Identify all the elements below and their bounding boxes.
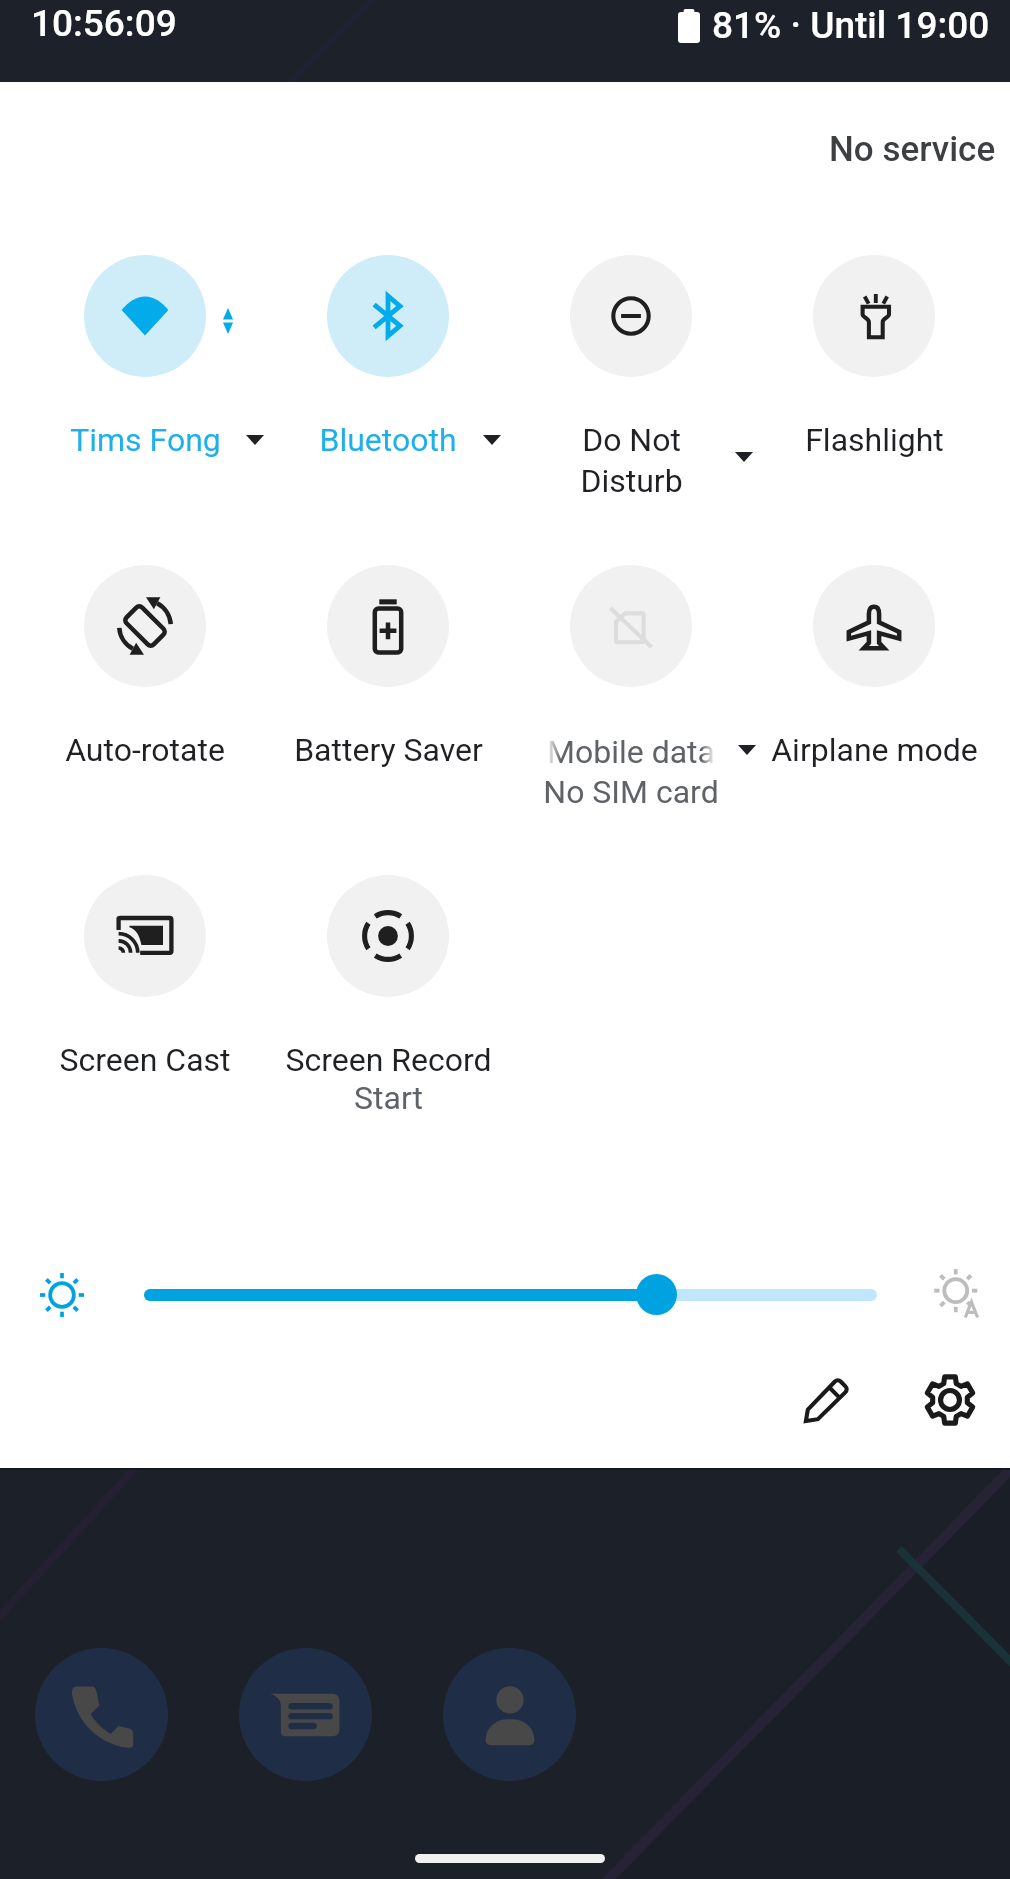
staticText: Airplane mode [771,731,978,769]
button[interactable]: Screen Record [327,875,449,997]
staticText: Do Not Disturb [580,421,683,500]
button[interactable]: Brightness [144,1289,877,1301]
button[interactable]: Tims Fong [84,255,206,377]
button[interactable]: Battery Saver [327,565,449,687]
staticText: No service [829,129,996,170]
button[interactable]: Phone [35,1648,168,1781]
staticText: Mobile data [547,733,715,771]
button[interactable]: Airplane mode [813,565,935,687]
button[interactable]: Auto-rotate [84,565,206,687]
staticText: Flashlight [805,421,944,459]
button[interactable]: Screen Cast [84,875,206,997]
button[interactable]: Contacts [443,1648,576,1781]
staticText: Screen Record [285,1041,492,1079]
staticText: 81% · Until 19:00 [712,4,990,47]
staticText: Battery Saver [294,731,483,769]
button[interactable]: Settings [902,1352,998,1448]
staticText: Screen Cast [59,1041,231,1079]
button[interactable]: Mobile data [570,565,692,687]
button[interactable]: Flashlight [813,255,935,377]
staticText: Bluetooth [319,421,457,459]
staticText: Start [354,1079,423,1117]
staticText: Auto-rotate [65,731,225,769]
button[interactable]: Bluetooth [327,255,449,377]
button[interactable]: Messages [239,1648,372,1781]
staticText: Tims Fong [70,421,221,459]
button[interactable]: Do Not Disturb [570,255,692,377]
staticText: No SIM card [543,773,719,811]
staticText: 10:56:09 [31,2,177,45]
button[interactable]: Edit [779,1352,875,1448]
